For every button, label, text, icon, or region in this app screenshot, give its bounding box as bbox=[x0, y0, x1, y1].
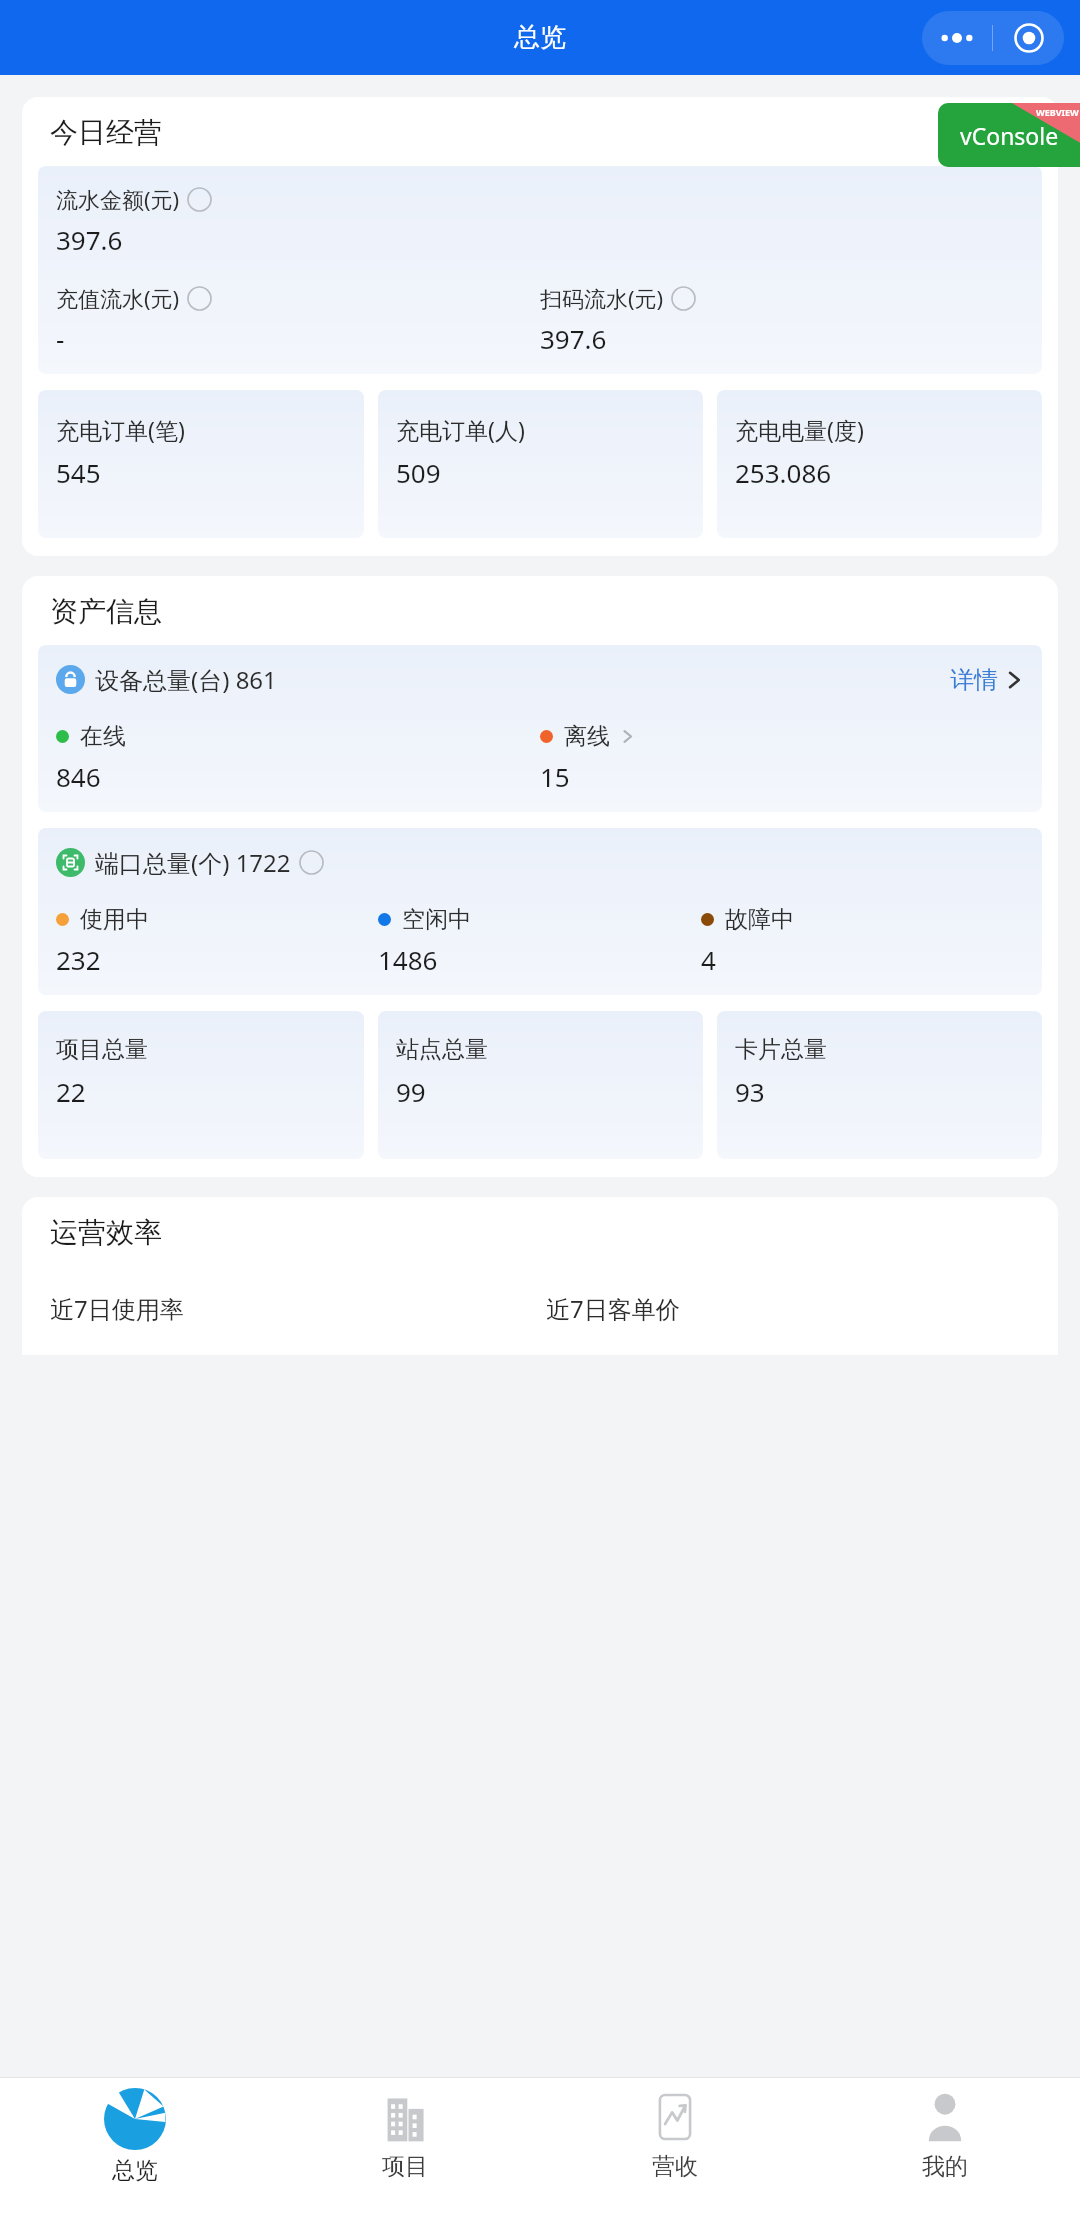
staticText: 充值流水(元) bbox=[56, 283, 180, 313]
staticText: 故障中 bbox=[725, 905, 794, 934]
button[interactable]: 详情 bbox=[950, 665, 1024, 695]
staticText: 流水金额(元) bbox=[56, 184, 180, 214]
button[interactable]: 我的 bbox=[810, 2078, 1080, 2221]
staticText: 93 bbox=[735, 1074, 765, 1109]
staticText: 运营效率 bbox=[50, 1215, 162, 1250]
staticText: 详情 bbox=[950, 665, 998, 695]
staticText: 15 bbox=[540, 759, 570, 794]
staticText: 设备总量(台) 861 bbox=[95, 663, 277, 696]
staticText: 项目 bbox=[382, 2152, 428, 2181]
button[interactable]: 项目 bbox=[270, 2078, 540, 2221]
staticText: 在线 bbox=[80, 722, 126, 751]
staticText: 我的 bbox=[922, 2152, 968, 2181]
button[interactable]: vConsole bbox=[938, 103, 1080, 167]
staticText: 99 bbox=[396, 1074, 426, 1109]
staticText: 营收 bbox=[652, 2152, 698, 2181]
staticText: 端口总量(个) 1722 bbox=[95, 846, 291, 879]
staticText: - bbox=[56, 321, 65, 356]
staticText: 离线 bbox=[564, 722, 610, 751]
staticText: 使用中 bbox=[80, 905, 149, 934]
staticText: 资产信息 bbox=[50, 594, 162, 629]
staticText: 充电订单(笔) bbox=[56, 414, 185, 445]
staticText: 232 bbox=[56, 942, 101, 977]
button[interactable]: 营收 bbox=[540, 2078, 810, 2221]
staticText: 253.086 bbox=[735, 455, 832, 490]
staticText: 项目总量 bbox=[56, 1035, 148, 1064]
staticText: 22 bbox=[56, 1074, 86, 1109]
staticText: 4 bbox=[701, 942, 716, 977]
staticText: 846 bbox=[56, 759, 101, 794]
staticText: 总览 bbox=[112, 2156, 158, 2185]
staticText: 充电电量(度) bbox=[735, 414, 864, 445]
staticText: 今日经营 bbox=[50, 115, 162, 150]
staticText: 545 bbox=[56, 455, 101, 490]
staticText: 充电订单(人) bbox=[396, 414, 525, 445]
staticText: 空闲中 bbox=[402, 905, 471, 934]
staticText: 397.6 bbox=[56, 222, 123, 257]
staticText: 近7日使用率 bbox=[50, 1292, 546, 1325]
staticText: 近7日客单价 bbox=[546, 1292, 1042, 1325]
button[interactable]: Close bbox=[993, 11, 1064, 65]
staticText: 扫码流水(元) bbox=[540, 283, 664, 313]
staticText: 总览 bbox=[514, 21, 566, 54]
staticText: WEBVIEW bbox=[1036, 106, 1079, 118]
staticText: 站点总量 bbox=[396, 1035, 488, 1064]
button[interactable]: 总览 bbox=[0, 2078, 270, 2221]
staticText: 1486 bbox=[378, 942, 438, 977]
staticText: 卡片总量 bbox=[735, 1035, 827, 1064]
button[interactable]: More bbox=[922, 11, 992, 65]
staticText: 397.6 bbox=[540, 321, 607, 356]
staticText: 509 bbox=[396, 455, 441, 490]
staticText: vConsole bbox=[960, 120, 1059, 151]
